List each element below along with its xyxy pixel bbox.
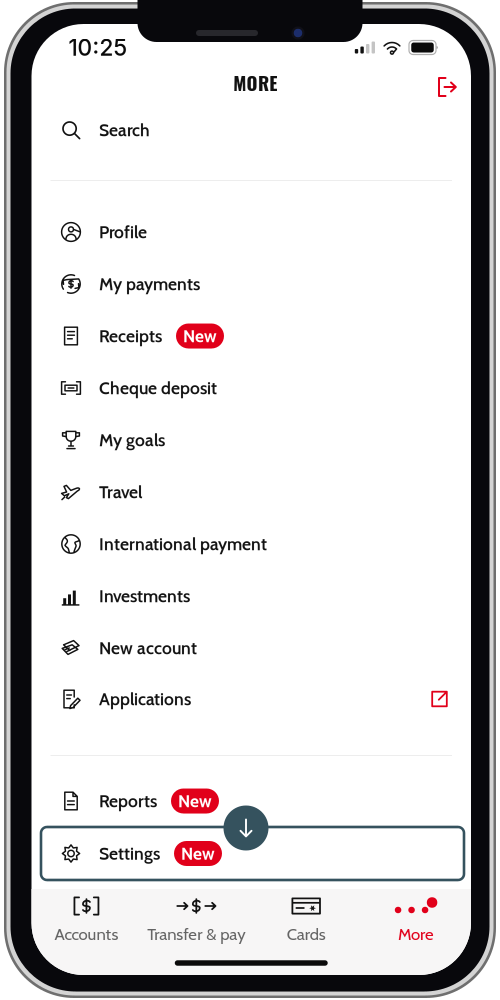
staticText: Travel bbox=[99, 481, 142, 503]
button[interactable]: Accounts bbox=[31, 889, 141, 950]
staticText: MORE bbox=[233, 69, 277, 96]
button[interactable]: Applications bbox=[31, 673, 471, 725]
staticText: New bbox=[181, 843, 215, 864]
staticText: Cards bbox=[287, 924, 326, 944]
button[interactable]: Receipts bbox=[31, 310, 471, 362]
staticText: More bbox=[398, 924, 434, 944]
button[interactable]: International payment bbox=[31, 518, 471, 570]
staticText: Accounts bbox=[54, 924, 118, 944]
button[interactable]: Settings bbox=[41, 827, 464, 879]
staticText: My payments bbox=[99, 273, 200, 295]
staticText: 10:25 bbox=[68, 34, 127, 61]
staticText: International payment bbox=[99, 533, 267, 555]
button[interactable]: Cards bbox=[251, 889, 361, 950]
staticText: Transfer & pay bbox=[147, 924, 245, 944]
staticText: My goals bbox=[99, 429, 165, 451]
staticText: Investments bbox=[99, 585, 190, 607]
button[interactable]: Log out bbox=[427, 65, 467, 105]
staticText: Cheque deposit bbox=[99, 377, 217, 399]
staticText: Applications bbox=[99, 688, 191, 710]
button[interactable]: Reports bbox=[31, 775, 471, 827]
button[interactable]: Cheque deposit bbox=[31, 362, 471, 414]
staticText: Reports bbox=[99, 790, 157, 812]
staticText: Settings bbox=[99, 843, 160, 864]
button[interactable]: New account bbox=[31, 622, 471, 674]
staticText: Profile bbox=[99, 221, 147, 243]
button[interactable]: Travel bbox=[31, 466, 471, 518]
button[interactable]: Profile bbox=[31, 206, 471, 258]
staticText: New bbox=[178, 790, 212, 812]
button[interactable]: More bbox=[361, 889, 471, 950]
button[interactable]: My payments bbox=[31, 258, 471, 310]
button[interactable]: My goals bbox=[31, 414, 471, 466]
button[interactable]: Investments bbox=[31, 570, 471, 622]
button[interactable]: Search bbox=[31, 104, 471, 156]
staticText: Receipts bbox=[99, 325, 162, 347]
staticText: New bbox=[183, 325, 217, 347]
staticText: Search bbox=[99, 119, 150, 141]
staticText: New account bbox=[99, 637, 197, 659]
button[interactable]: Transfer & pay bbox=[141, 889, 251, 950]
